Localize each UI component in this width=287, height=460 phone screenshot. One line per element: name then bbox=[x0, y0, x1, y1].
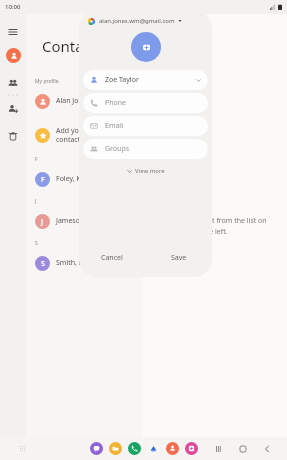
staticText: J bbox=[35, 198, 37, 205]
staticText: My profile bbox=[35, 78, 59, 85]
button[interactable]: Add your contacts bbox=[26, 122, 142, 148]
staticText: View more bbox=[135, 167, 165, 175]
staticText: Alan Jones bbox=[56, 96, 91, 106]
staticText: S bbox=[41, 259, 45, 269]
button[interactable]: Account bbox=[6, 48, 21, 63]
staticText: S bbox=[35, 240, 38, 247]
staticText: Select a contact from the list on the le… bbox=[163, 216, 267, 236]
staticText: Zoe Taylor bbox=[105, 75, 196, 85]
button[interactable]: alan.jones.wm@gmail.com bbox=[79, 10, 212, 32]
staticText: Jameson bbox=[56, 216, 85, 226]
staticText: Email bbox=[105, 121, 201, 131]
staticText: alan.jones.wm@gmail.com bbox=[99, 17, 175, 25]
staticText: 10:00 bbox=[5, 3, 21, 11]
button[interactable]: J bbox=[26, 208, 142, 234]
button[interactable]: Add photo bbox=[131, 32, 161, 62]
button[interactable]: Phone bbox=[83, 93, 208, 113]
button[interactable]: Groups bbox=[83, 139, 208, 159]
button[interactable]: Zoe Taylor bbox=[83, 70, 208, 90]
staticText: Phone bbox=[105, 98, 201, 108]
button[interactable]: Contacts bbox=[166, 442, 179, 455]
button[interactable]: Save bbox=[145, 243, 212, 273]
button[interactable]: S bbox=[26, 250, 142, 276]
staticText: J bbox=[41, 217, 44, 227]
button[interactable]: Cancel bbox=[79, 243, 145, 273]
button[interactable]: Trash bbox=[5, 128, 21, 144]
button[interactable]: Home bbox=[236, 442, 249, 455]
staticText: F bbox=[41, 175, 45, 185]
button[interactable]: Phone bbox=[128, 442, 141, 455]
button[interactable]: Groups bbox=[5, 75, 21, 91]
button[interactable]: Alan Jones bbox=[26, 88, 142, 114]
button[interactable]: Menu bbox=[5, 24, 21, 40]
button[interactable]: Messages bbox=[90, 442, 103, 455]
button[interactable]: Drive bbox=[147, 442, 160, 455]
button[interactable]: Files bbox=[109, 442, 122, 455]
staticText: Save bbox=[171, 253, 187, 263]
button[interactable]: Email bbox=[83, 116, 208, 136]
staticText: Add your contacts bbox=[56, 126, 86, 144]
staticText: Smith, Mari bbox=[56, 258, 94, 268]
staticText: Cancel bbox=[101, 253, 123, 263]
button[interactable]: F bbox=[26, 166, 142, 192]
button[interactable]: Add contact bbox=[5, 101, 21, 117]
button[interactable]: Recents bbox=[212, 442, 225, 455]
staticText: Groups bbox=[105, 144, 201, 154]
button[interactable]: Photos bbox=[185, 442, 198, 455]
button[interactable]: Back bbox=[260, 442, 273, 455]
staticText: F bbox=[35, 156, 38, 163]
staticText: Foley, Ke bbox=[56, 174, 85, 184]
button[interactable]: View more bbox=[79, 165, 212, 177]
staticText: Contacts bbox=[42, 36, 104, 56]
